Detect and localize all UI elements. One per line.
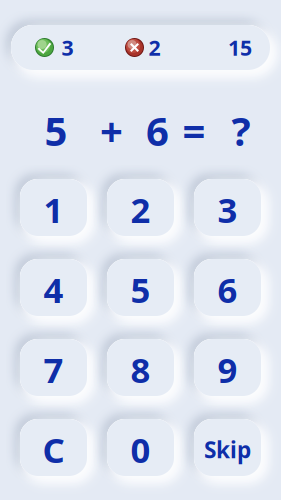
- button[interactable]: 1: [20, 179, 87, 236]
- staticText: 7: [43, 346, 63, 392]
- staticText: 15: [228, 33, 252, 62]
- button[interactable]: 7: [20, 339, 87, 396]
- staticText: C: [42, 426, 64, 472]
- button[interactable]: 5: [107, 259, 174, 316]
- staticText: 4: [43, 266, 63, 312]
- staticText: 8: [130, 346, 150, 392]
- button[interactable]: 0: [107, 419, 174, 476]
- staticText: 0: [130, 426, 150, 472]
- button[interactable]: 3: [194, 179, 261, 236]
- staticText: =: [182, 104, 205, 157]
- staticText: 3: [61, 33, 73, 62]
- staticText: 6: [217, 266, 237, 312]
- button[interactable]: C: [20, 419, 87, 476]
- staticText: Skip: [204, 434, 251, 464]
- staticText: 1: [43, 186, 63, 232]
- staticText: 9: [217, 346, 237, 392]
- button[interactable]: 4: [20, 259, 87, 316]
- staticText: 6: [146, 104, 169, 157]
- staticText: 5: [130, 266, 150, 312]
- staticText: 5: [44, 104, 67, 157]
- button[interactable]: 8: [107, 339, 174, 396]
- staticText: 3: [217, 186, 237, 232]
- button[interactable]: 2: [107, 179, 174, 236]
- staticText: ?: [231, 104, 250, 157]
- button[interactable]: Skip: [194, 419, 261, 476]
- staticText: 2: [148, 33, 160, 62]
- button[interactable]: 6: [194, 259, 261, 316]
- staticText: 2: [130, 186, 150, 232]
- button[interactable]: 9: [194, 339, 261, 396]
- staticText: +: [100, 104, 123, 157]
